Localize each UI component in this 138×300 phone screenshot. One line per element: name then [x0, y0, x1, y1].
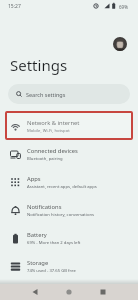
staticText: Battery [27, 231, 47, 239]
button[interactable] [91, 284, 115, 300]
staticText: Storage [27, 259, 49, 267]
staticText: Bluetooth, pairing [27, 156, 63, 162]
staticText: Settings [10, 55, 68, 75]
staticText: Notification history, conversations [27, 212, 95, 218]
button[interactable]: Connected devices [0, 140, 138, 168]
staticText: Assistant, recent apps, default apps [27, 184, 97, 190]
button[interactable]: Network & internet [0, 112, 138, 140]
button[interactable] [23, 284, 47, 300]
staticText: Notifications [27, 203, 62, 211]
staticText: Mobile, Wi-Fi, hotspot [27, 128, 70, 134]
staticText: 74% used - 37.65 GB free [27, 268, 76, 274]
staticText: 69% - More than 2 days left [27, 240, 81, 246]
staticText: Apps [27, 175, 41, 183]
button[interactable] [113, 37, 127, 51]
button[interactable]: Apps [0, 168, 138, 196]
button[interactable] [57, 284, 81, 300]
button[interactable]: Battery [0, 224, 138, 252]
staticText: Connected devices [27, 147, 78, 155]
staticText: 69% [119, 4, 128, 10]
button[interactable]: Notifications [0, 196, 138, 224]
button[interactable]: Search settings [8, 84, 130, 104]
staticText: Network & internet [27, 119, 80, 127]
staticText: 15:27 [8, 3, 21, 10]
staticText: Search settings [26, 91, 66, 98]
button[interactable]: Storage [0, 252, 138, 280]
